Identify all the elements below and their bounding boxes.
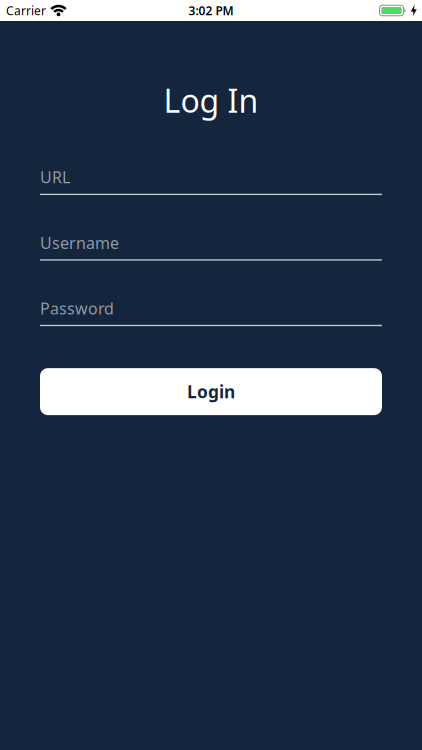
staticText: Log In [163,79,258,121]
staticText: Password [40,298,114,319]
staticText: Password [40,298,114,319]
staticText: Carrier [6,2,46,18]
staticText: Username [40,232,119,253]
staticText: URL [40,166,70,188]
textField[interactable]: URL [40,166,382,188]
textField[interactable]: Username [40,232,382,253]
staticText: Login [187,380,235,403]
staticText: 3:02 PM [188,2,233,18]
staticText: URL [40,166,70,188]
button[interactable]: Login [40,368,382,415]
secureTextField[interactable]: Password [40,298,382,319]
staticText: Username [40,232,119,253]
